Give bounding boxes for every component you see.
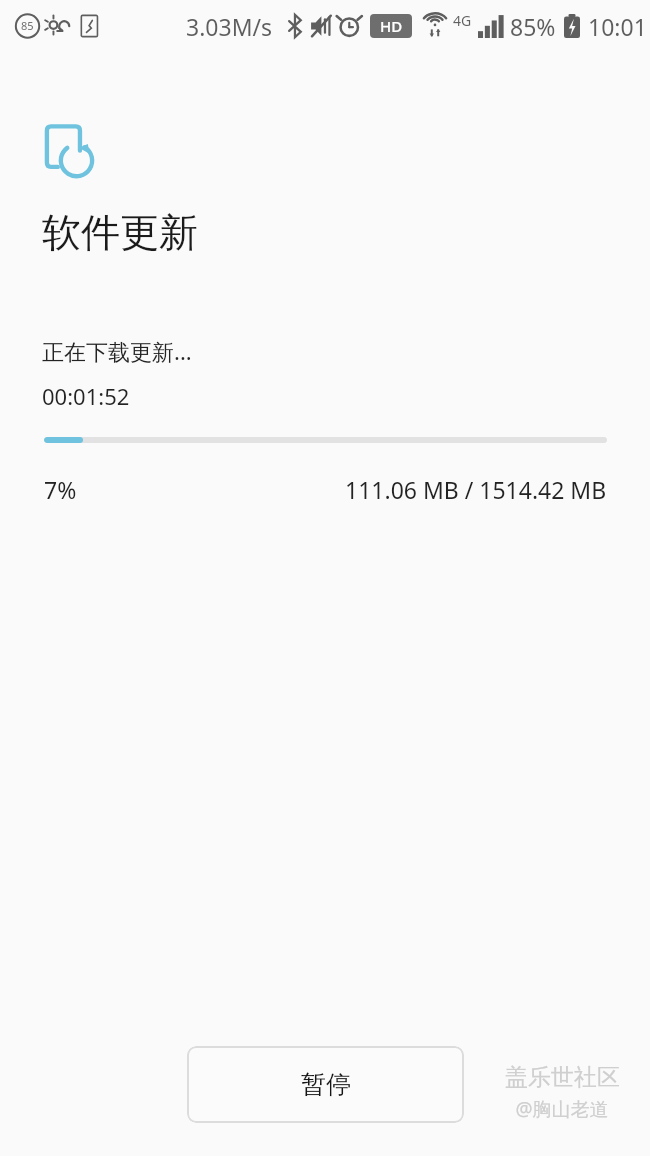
- staticText: 4G: [453, 11, 472, 30]
- staticText: 盖乐世社区: [505, 1063, 620, 1092]
- staticText: 暂停: [301, 1069, 351, 1100]
- staticText: 10:01: [588, 11, 647, 42]
- staticText: @胸山老道: [515, 1096, 609, 1122]
- staticText: 7%: [44, 474, 77, 505]
- staticText: 软件更新: [42, 208, 198, 257]
- staticText: 正在下载更新...: [42, 336, 192, 366]
- staticText: 85: [21, 18, 34, 33]
- staticText: 3.03M/s: [186, 11, 273, 42]
- staticText: 85%: [510, 11, 556, 42]
- button[interactable]: 暂停: [187, 1046, 464, 1123]
- staticText: 00:01:52: [42, 381, 130, 411]
- staticText: 111.06 MB / 1514.42 MB: [345, 474, 607, 505]
- staticText: HD: [380, 16, 403, 36]
